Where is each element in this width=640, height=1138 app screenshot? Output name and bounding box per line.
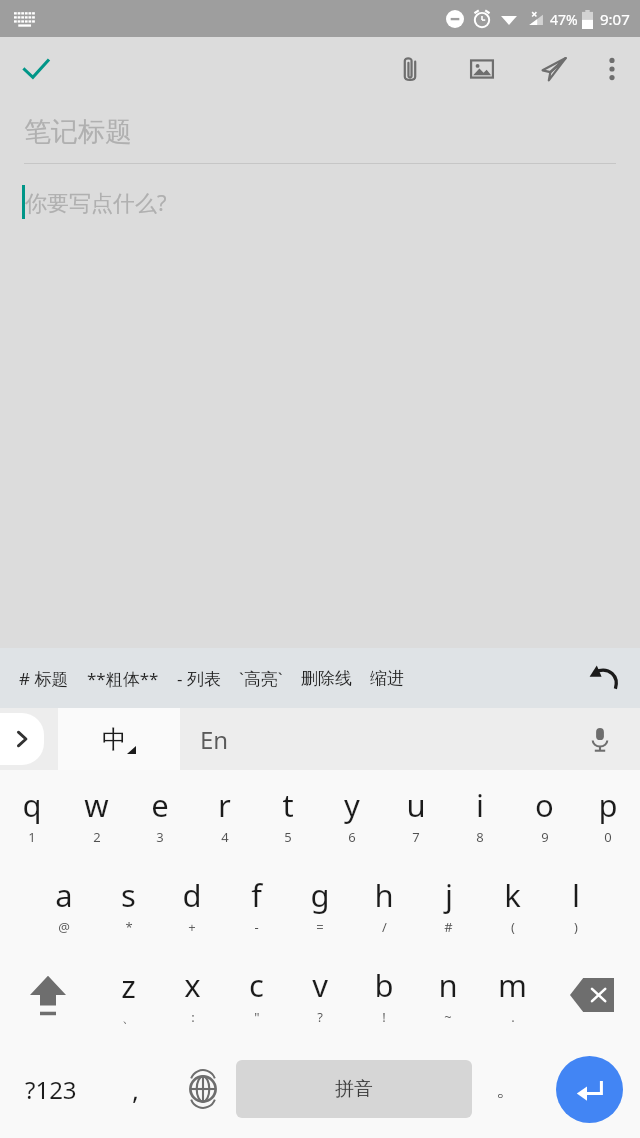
button[interactable]: q bbox=[0, 770, 64, 860]
staticText: 9:07 bbox=[600, 9, 630, 29]
staticText: k bbox=[504, 874, 521, 916]
button[interactable]: v bbox=[288, 950, 352, 1040]
button[interactable]: f bbox=[224, 860, 288, 950]
staticText: ? bbox=[317, 1008, 323, 1026]
button[interactable]: r bbox=[192, 770, 256, 860]
staticText: 9 bbox=[541, 828, 549, 846]
button[interactable]: s bbox=[96, 860, 160, 950]
staticText: g bbox=[310, 874, 330, 916]
staticText: 你要写点什么? bbox=[25, 187, 167, 217]
staticText: **粗体** bbox=[87, 667, 159, 690]
button[interactable]: y bbox=[320, 770, 384, 860]
staticText: u bbox=[406, 784, 426, 826]
button[interactable]: j bbox=[416, 860, 480, 950]
button[interactable]: 删除线 bbox=[292, 648, 361, 708]
staticText: q bbox=[22, 784, 42, 826]
button[interactable]: l bbox=[544, 860, 608, 950]
button[interactable]: w bbox=[64, 770, 128, 860]
button[interactable]: z bbox=[96, 950, 160, 1040]
button[interactable]: ?123 bbox=[0, 1040, 102, 1138]
staticText: c bbox=[249, 964, 264, 1006]
staticText: 47% bbox=[550, 10, 578, 29]
button[interactable]: Send bbox=[530, 45, 578, 93]
button[interactable]: h bbox=[352, 860, 416, 950]
button[interactable]: 拼音 bbox=[236, 1060, 472, 1118]
button[interactable]: Voice input bbox=[576, 715, 624, 763]
button[interactable]: Shift bbox=[0, 950, 96, 1040]
button[interactable]: Change language bbox=[169, 1040, 236, 1138]
button[interactable]: x bbox=[160, 950, 224, 1040]
staticText: ! bbox=[382, 1008, 386, 1026]
staticText: ( bbox=[511, 918, 515, 936]
button[interactable]: c bbox=[224, 950, 288, 1040]
staticText: p bbox=[598, 784, 618, 826]
staticText: 3 bbox=[156, 828, 164, 846]
staticText: e bbox=[151, 784, 169, 826]
staticText: En bbox=[200, 723, 229, 756]
button[interactable]: Attach file bbox=[386, 45, 434, 93]
button[interactable]: En bbox=[200, 708, 310, 770]
button[interactable]: , bbox=[102, 1040, 169, 1138]
staticText: 笔记标题 bbox=[24, 115, 132, 149]
button[interactable]: 笔记标题 bbox=[24, 101, 616, 163]
button[interactable]: o bbox=[512, 770, 576, 860]
staticText: r bbox=[218, 784, 231, 826]
staticText: + bbox=[188, 918, 196, 936]
staticText: h bbox=[374, 874, 394, 916]
staticText: . bbox=[511, 1008, 515, 1026]
button[interactable]: p bbox=[576, 770, 640, 860]
staticText: z bbox=[121, 965, 136, 1007]
button[interactable]: 中 bbox=[58, 708, 180, 770]
button[interactable]: u bbox=[384, 770, 448, 860]
button[interactable]: 缩进 bbox=[361, 648, 413, 708]
button[interactable]: - 列表 bbox=[168, 648, 230, 708]
button[interactable]: Save note bbox=[12, 45, 60, 93]
staticText: ~ bbox=[444, 1008, 452, 1026]
button[interactable]: Insert image bbox=[458, 45, 506, 93]
staticText: i bbox=[476, 784, 484, 826]
button[interactable]: t bbox=[256, 770, 320, 860]
button[interactable]: a bbox=[32, 860, 96, 950]
staticText: @ bbox=[58, 918, 70, 936]
staticText: v bbox=[312, 964, 328, 1006]
staticText: f bbox=[251, 874, 262, 916]
button[interactable]: k bbox=[480, 860, 544, 950]
staticText: 4 bbox=[221, 828, 229, 846]
staticText: n bbox=[438, 964, 458, 1006]
staticText: 缩进 bbox=[370, 668, 404, 689]
staticText: , bbox=[132, 1072, 139, 1107]
staticText: ) bbox=[574, 918, 578, 936]
staticText: 7 bbox=[412, 828, 420, 846]
staticText: m bbox=[498, 964, 527, 1006]
button[interactable]: **粗体** bbox=[78, 648, 168, 708]
staticText: - bbox=[254, 918, 259, 936]
button[interactable]: e bbox=[128, 770, 192, 860]
button[interactable]: 。 bbox=[472, 1040, 539, 1138]
staticText: w bbox=[84, 784, 109, 826]
button[interactable]: `高亮` bbox=[230, 648, 292, 708]
button[interactable]: g bbox=[288, 860, 352, 950]
button[interactable]: d bbox=[160, 860, 224, 950]
button[interactable]: More options bbox=[588, 45, 636, 93]
button[interactable]: Backspace bbox=[544, 950, 640, 1040]
staticText: 删除线 bbox=[301, 668, 352, 689]
staticText: y bbox=[344, 784, 360, 826]
button[interactable]: Enter bbox=[539, 1040, 640, 1138]
staticText: # 标题 bbox=[19, 667, 69, 690]
button[interactable]: b bbox=[352, 950, 416, 1040]
button[interactable]: # 标题 bbox=[10, 648, 78, 708]
staticText: `高亮` bbox=[239, 667, 283, 690]
staticText: * bbox=[125, 918, 133, 936]
staticText: t bbox=[282, 784, 294, 826]
staticText: : bbox=[191, 1008, 195, 1026]
button[interactable]: Undo bbox=[574, 648, 634, 708]
button[interactable]: m bbox=[480, 950, 544, 1040]
button[interactable]: n bbox=[416, 950, 480, 1040]
button[interactable]: i bbox=[448, 770, 512, 860]
staticText: o bbox=[535, 784, 554, 826]
button[interactable]: Expand toolbar bbox=[0, 713, 44, 765]
staticText: x bbox=[184, 964, 201, 1006]
staticText: 8 bbox=[476, 828, 484, 846]
staticText: a bbox=[55, 874, 73, 916]
